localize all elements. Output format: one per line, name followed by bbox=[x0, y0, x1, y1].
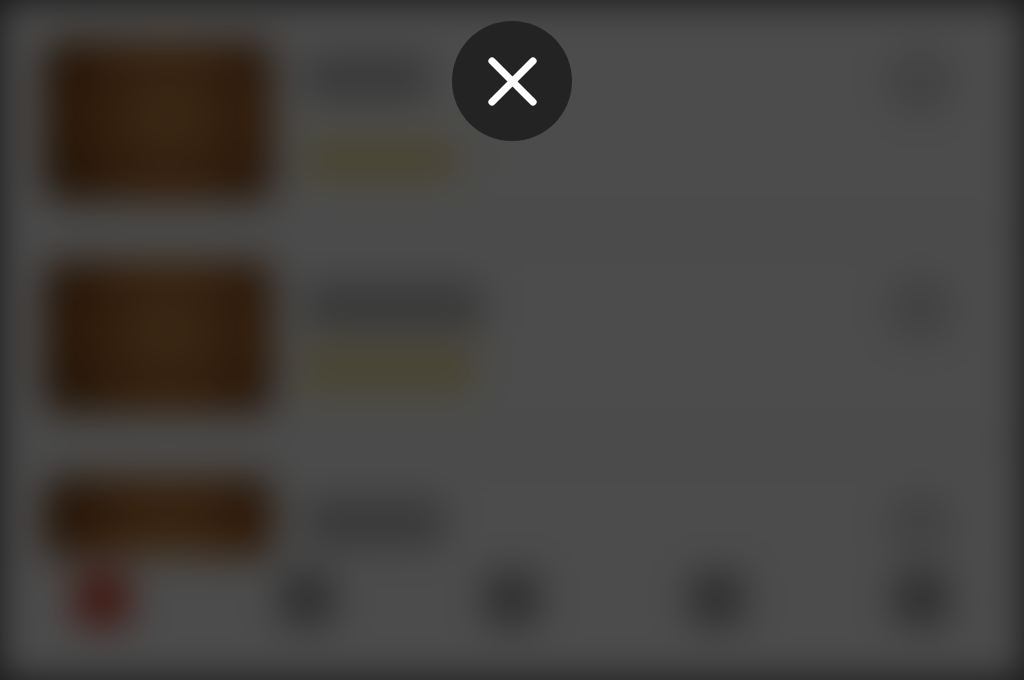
button[interactable]: Close bbox=[452, 21, 572, 141]
